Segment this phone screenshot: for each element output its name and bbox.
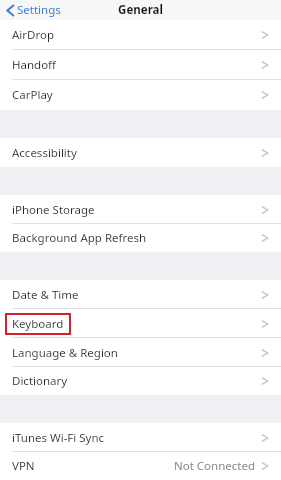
button[interactable]: Background App Refresh	[0, 224, 281, 252]
button[interactable]: Language & Region	[0, 338, 281, 367]
button[interactable]: Dictionary	[0, 367, 281, 395]
staticText: Settings	[17, 2, 61, 18]
staticText: Date & Time	[12, 287, 79, 303]
staticText: Handoff	[12, 57, 57, 73]
staticText: CarPlay	[12, 87, 53, 103]
button[interactable]: Accessibility	[0, 138, 281, 167]
button[interactable]: iPhone Storage	[0, 195, 281, 224]
button[interactable]: Settings	[0, 0, 67, 20]
button[interactable]: Handoff	[0, 50, 281, 80]
staticText: Not Connected	[174, 458, 255, 474]
button[interactable]: Keyboard	[0, 309, 281, 338]
button[interactable]: Date & Time	[0, 280, 281, 309]
staticText: Dictionary	[12, 373, 68, 389]
staticText: Keyboard	[12, 316, 64, 332]
staticText: VPN	[12, 458, 35, 474]
button[interactable]: CarPlay	[0, 80, 281, 110]
staticText: iTunes Wi-Fi Sync	[12, 430, 105, 446]
staticText: iPhone Storage	[12, 202, 95, 218]
button[interactable]: AirDrop	[0, 20, 281, 50]
staticText: Language & Region	[12, 345, 118, 361]
button[interactable]: iTunes Wi-Fi Sync	[0, 423, 281, 452]
staticText: General	[118, 2, 163, 18]
staticText: AirDrop	[12, 27, 55, 43]
staticText: Accessibility	[12, 145, 77, 161]
button[interactable]: VPN	[0, 452, 281, 480]
staticText: Background App Refresh	[12, 230, 147, 246]
